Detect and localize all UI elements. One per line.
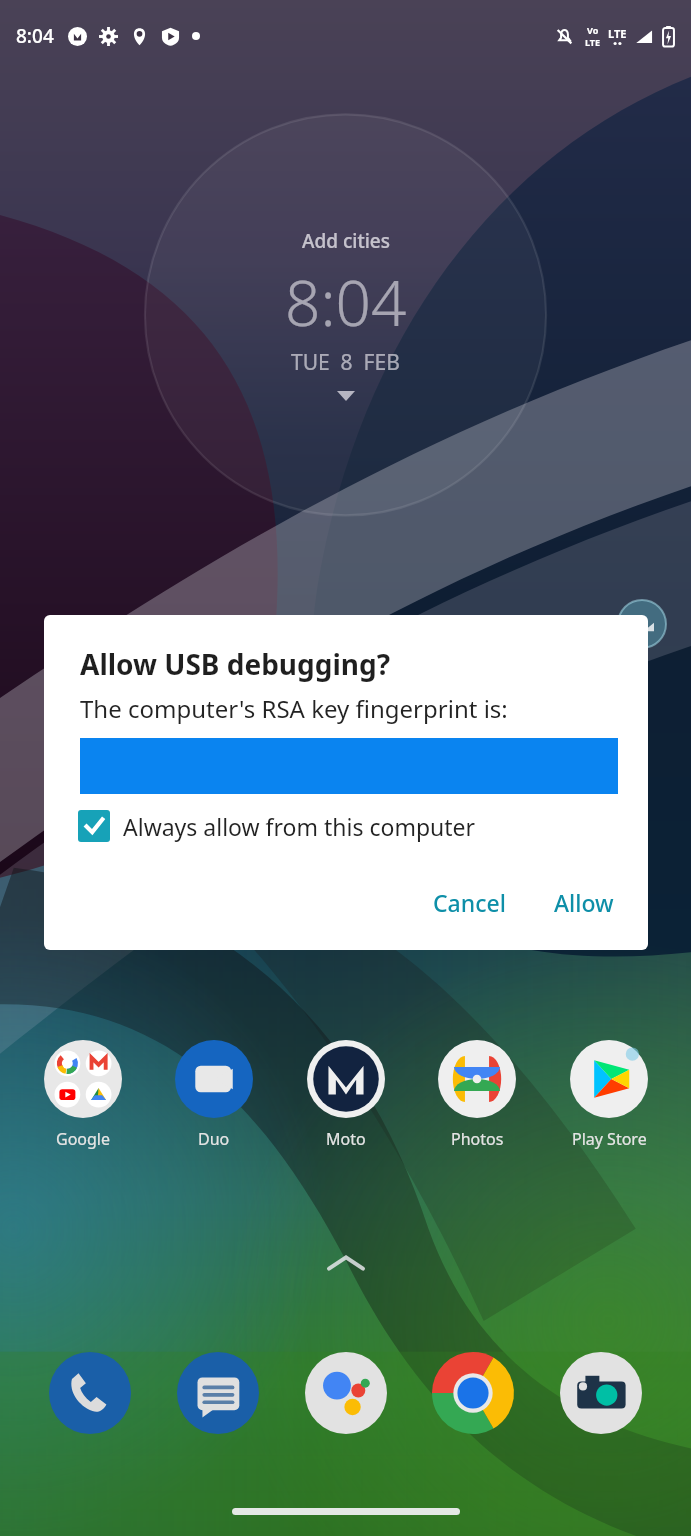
button[interactable]: Duo	[155, 1040, 273, 1150]
staticText: Vo	[587, 24, 599, 36]
button[interactable]: Camera	[553, 1345, 649, 1441]
staticText: Allow	[554, 887, 614, 918]
staticText: 8:04	[285, 260, 407, 344]
button[interactable]: Phone	[42, 1345, 138, 1441]
staticText: Cancel	[433, 887, 506, 918]
staticText: Add cities	[302, 228, 390, 254]
staticText: Always allow from this computer	[123, 811, 476, 842]
button[interactable]: Moto	[287, 1040, 405, 1150]
staticText: Duo	[198, 1128, 230, 1150]
staticText: Moto	[326, 1128, 366, 1150]
staticText: LTE	[585, 36, 601, 48]
staticText: 8:04	[16, 23, 54, 49]
button[interactable]: Chrome	[425, 1345, 521, 1441]
button[interactable]: Assistant	[298, 1345, 394, 1441]
staticText: LTE	[608, 26, 627, 41]
button[interactable]: Play Store	[550, 1040, 668, 1150]
staticText: Photos	[451, 1128, 504, 1150]
button[interactable]: Photos	[418, 1040, 536, 1150]
button[interactable]: Cancel	[417, 877, 522, 928]
button[interactable]: Always allow from this computer	[78, 810, 476, 842]
staticText: Play Store	[572, 1128, 647, 1150]
button[interactable]: Messages	[170, 1345, 266, 1441]
button[interactable]: Google	[24, 1040, 142, 1150]
staticText: Google	[56, 1128, 111, 1150]
staticText: Allow USB debugging?	[80, 645, 391, 683]
staticText: The computer's RSA key fingerprint is:	[80, 692, 508, 725]
staticText: TUE 8 FEB	[291, 348, 400, 377]
button[interactable]: Allow	[538, 877, 630, 928]
